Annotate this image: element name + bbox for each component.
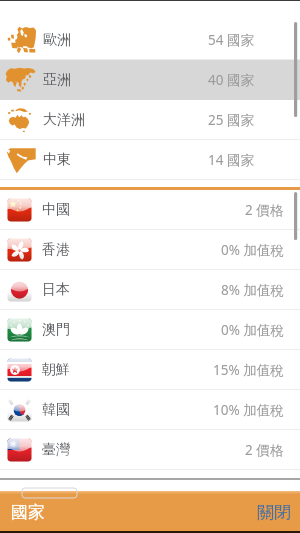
staticText: 0% 加值稅: [221, 241, 284, 259]
button[interactable]: 大洋洲: [0, 100, 300, 140]
staticText: 亞洲: [43, 71, 71, 89]
staticText: 25 國家: [208, 111, 254, 129]
staticText: 關閉: [257, 502, 291, 523]
staticText: 8% 加值稅: [221, 281, 284, 299]
staticText: 0% 加值稅: [221, 321, 284, 339]
staticText: 15% 加值稅: [213, 361, 284, 379]
button[interactable]: 澳門: [0, 310, 300, 350]
button[interactable]: 亞洲: [0, 60, 300, 100]
staticText: 澳門: [42, 321, 70, 339]
staticText: 歐洲: [43, 31, 71, 49]
staticText: 韓國: [42, 401, 70, 419]
button[interactable]: 朝鮮: [0, 350, 300, 390]
staticText: 朝鮮: [42, 361, 70, 379]
button[interactable]: 關閉: [249, 502, 300, 523]
button[interactable]: 國家: [0, 502, 53, 523]
staticText: 中東: [43, 151, 71, 169]
button[interactable]: 中東: [0, 140, 300, 180]
staticText: 香港: [42, 241, 70, 259]
staticText: 國家: [11, 502, 45, 523]
button[interactable]: 日本: [0, 270, 300, 310]
button[interactable]: 香港: [0, 230, 300, 270]
staticText: 日本: [42, 281, 70, 299]
button[interactable]: 中國: [0, 190, 300, 230]
staticText: 大洋洲: [43, 111, 85, 129]
staticText: 臺灣: [42, 441, 70, 459]
staticText: 10% 加值稅: [213, 401, 284, 419]
staticText: 中國: [42, 201, 70, 219]
staticText: 54 國家: [208, 31, 254, 49]
staticText: 2 價格: [245, 201, 284, 219]
staticText: 14 國家: [208, 151, 254, 169]
staticText: 40 國家: [208, 71, 254, 89]
button[interactable]: 臺灣: [0, 430, 300, 470]
staticText: 2 價格: [245, 441, 284, 459]
button[interactable]: 韓國: [0, 390, 300, 430]
button[interactable]: 歐洲: [0, 20, 300, 60]
